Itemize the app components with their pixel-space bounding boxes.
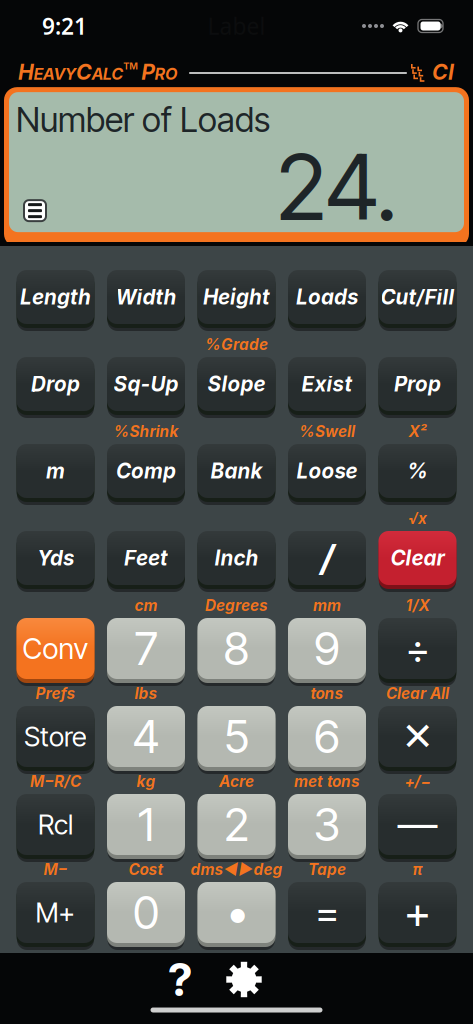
staticText: π [412,860,422,879]
button[interactable]: • [197,882,275,950]
button[interactable]: Length [16,270,94,331]
staticText: Inch [214,545,258,570]
staticText: Prefs [35,684,75,703]
staticText: Cut/Fill [380,284,454,309]
button[interactable]: 3 [288,794,366,862]
staticText: • [226,885,247,940]
staticText: ÷ [405,624,429,673]
button[interactable]: ÷ [378,618,456,686]
staticText: 4 [132,709,159,764]
button[interactable]: 1 [107,794,185,862]
staticText: HEAVYCALC [18,59,123,85]
staticText: Exist [301,371,352,396]
button[interactable]: + [378,882,456,950]
staticText: 8 [223,621,249,676]
staticText: %Grade [205,335,268,354]
button[interactable]: % [378,444,456,505]
button[interactable]: Feet [107,531,185,592]
button[interactable]: m [16,444,94,505]
staticText: 9 [314,621,340,676]
button[interactable]: 2 [197,794,275,862]
staticText: 1 [138,797,154,852]
staticText: Conv [22,631,88,666]
staticText: Comp [116,458,176,483]
button[interactable]: = [288,882,366,950]
staticText: tons [310,684,343,703]
staticText: 6 [314,709,340,764]
staticText: Yds [37,545,74,570]
staticText: 9:21 [42,11,87,41]
staticText: 5 [224,709,249,764]
staticText: ? [167,952,192,1007]
staticText: Feet [124,545,168,570]
staticText: CI [432,59,454,85]
staticText: 1/X [405,596,429,615]
staticText: Tape [308,860,346,879]
button[interactable]: Store [16,706,94,774]
button[interactable]: / [288,531,366,592]
button[interactable]: Conv [16,618,94,686]
staticText: M−R/C [30,772,81,791]
staticText: Loads [296,284,358,309]
staticText: X² [408,422,426,441]
button[interactable]: — [378,794,456,862]
button[interactable]: Height [197,270,275,331]
staticText: Bank [210,458,262,483]
button[interactable]: Loads [288,270,366,331]
button[interactable]: 5 [197,706,275,774]
staticText: Clear [390,545,444,570]
button[interactable]: Settings [212,959,276,999]
staticText: / [320,536,333,580]
button[interactable]: 7 [107,618,185,686]
button[interactable]: ✕ [378,706,456,774]
staticText: Slope [207,371,265,396]
staticText: Acre [219,772,254,791]
button[interactable]: Sq-Up [107,357,185,418]
button[interactable]: Cut/Fill [378,270,456,331]
staticText: m [46,458,65,483]
staticText: M+ [35,896,75,929]
staticText: PRO [141,59,178,85]
staticText: Cost [128,860,163,879]
staticText: mm [313,596,341,615]
staticText: dms◀▶deg [190,860,282,879]
staticText: = [315,888,339,937]
staticText: %Swell [299,422,355,441]
staticText: cm [134,596,157,615]
button[interactable]: 6 [288,706,366,774]
button[interactable]: Drop [16,357,94,418]
staticText: M− [43,860,67,879]
staticText: TM [123,60,138,72]
staticText: Number of Loads [16,99,270,140]
button[interactable]: Bank [197,444,275,505]
button[interactable]: Inch [197,531,275,592]
staticText: Sq-Up [113,371,178,396]
staticText: Height [203,284,270,309]
button[interactable]: Prop [378,357,456,418]
button[interactable]: 9 [288,618,366,686]
staticText: Rcl [38,808,73,841]
staticText: Clear All [386,684,449,703]
button[interactable]: Comp [107,444,185,505]
button[interactable]: Help [148,959,212,999]
button[interactable]: Rcl [16,794,94,862]
button[interactable]: Clear [378,531,456,592]
button[interactable]: Yds [16,531,94,592]
button[interactable]: Slope [197,357,275,418]
staticText: Degrees [205,596,268,615]
staticText: 24. [276,132,398,242]
staticText: Loose [296,458,357,483]
button[interactable]: Loose [288,444,366,505]
staticText: Length [20,284,91,309]
button[interactable]: Exist [288,357,366,418]
button[interactable]: Width [107,270,185,331]
button[interactable]: 4 [107,706,185,774]
button[interactable]: M+ [16,882,94,950]
button[interactable]: 0 [107,882,185,950]
button[interactable]: 8 [197,618,275,686]
staticText: 3 [313,797,340,852]
staticText: 0 [133,885,159,940]
button[interactable]: Menu [24,200,46,221]
staticText: lbs [134,684,157,703]
